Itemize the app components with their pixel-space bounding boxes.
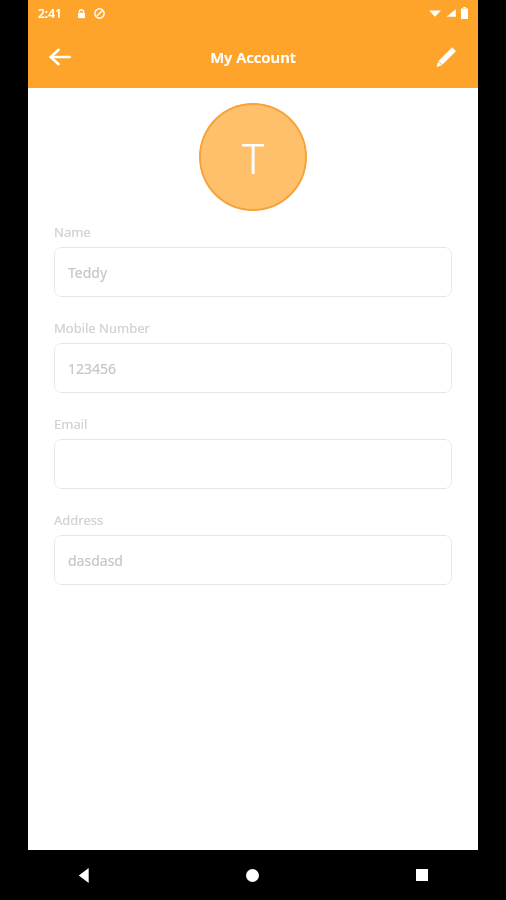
staticText: T — [242, 129, 265, 186]
staticText: 2:41 — [38, 5, 62, 21]
staticText: Name — [54, 223, 91, 241]
staticText: dasdasd — [68, 551, 123, 570]
button[interactable]: Teddy — [54, 247, 452, 297]
staticText: Email — [54, 415, 88, 433]
button[interactable]: 123456 — [54, 343, 452, 393]
button[interactable] — [54, 439, 452, 489]
staticText: Address — [54, 511, 104, 529]
button[interactable]: Profile picture — [199, 103, 307, 211]
button[interactable]: dasdasd — [54, 535, 452, 585]
staticText: My Account — [210, 47, 296, 67]
button[interactable]: Recent apps — [337, 850, 506, 900]
button[interactable]: Back — [0, 850, 168, 900]
button[interactable]: Home — [168, 850, 337, 900]
button[interactable]: Edit — [422, 33, 470, 81]
button[interactable]: Back — [36, 33, 84, 81]
staticText: Teddy — [68, 263, 108, 282]
staticText: 123456 — [68, 359, 117, 378]
staticText: Mobile Number — [54, 319, 150, 337]
